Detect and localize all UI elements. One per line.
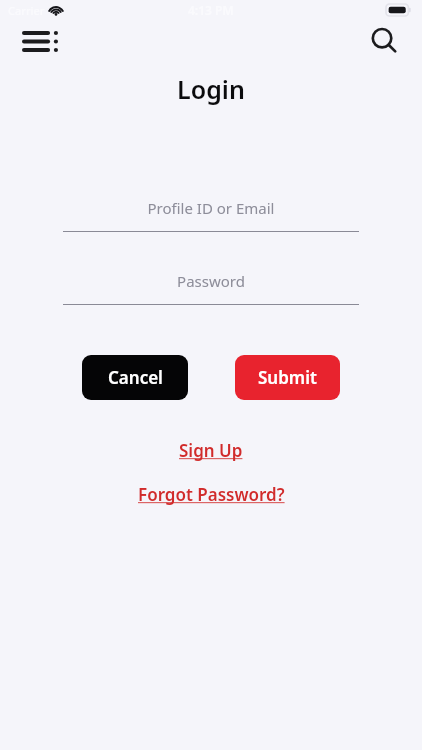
staticText: Password: [63, 271, 359, 291]
staticText: Profile ID or Email: [63, 198, 359, 218]
button[interactable]: Cancel: [82, 355, 188, 400]
staticText: Login: [0, 72, 422, 106]
staticText: Forgot Password?: [138, 483, 285, 505]
button[interactable]: Sign Up: [173, 437, 249, 463]
staticText: Cancel: [108, 366, 163, 389]
button[interactable]: Forgot Password?: [132, 481, 291, 507]
button[interactable]: Search: [362, 20, 406, 62]
staticText: Submit: [258, 366, 317, 389]
button[interactable]: Submit: [235, 355, 340, 400]
button[interactable]: Profile ID or Email: [63, 185, 359, 231]
staticText: Sign Up: [179, 439, 243, 461]
button[interactable]: Password: [63, 258, 359, 304]
button[interactable]: Menu: [18, 20, 62, 62]
